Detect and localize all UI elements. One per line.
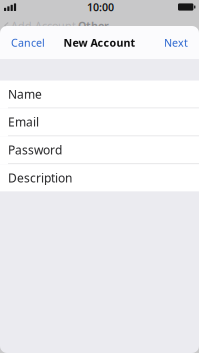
button[interactable]: Next <box>156 29 196 55</box>
staticText: Next <box>164 35 188 50</box>
staticText: New Account <box>63 35 135 50</box>
staticText: Add Account <box>11 18 76 33</box>
button[interactable]: Description <box>0 164 199 191</box>
staticText: Other <box>78 18 109 33</box>
staticText: Description <box>8 170 72 186</box>
staticText: Password <box>8 142 62 158</box>
button[interactable]: Password <box>0 136 199 164</box>
button[interactable]: Name <box>0 80 199 108</box>
staticText: Email <box>8 114 39 130</box>
button[interactable]: Email <box>0 108 199 136</box>
staticText: 10:00 <box>87 0 114 14</box>
staticText: Name <box>8 86 42 102</box>
button[interactable]: Cancel <box>3 29 53 55</box>
staticText: Cancel <box>11 35 45 50</box>
